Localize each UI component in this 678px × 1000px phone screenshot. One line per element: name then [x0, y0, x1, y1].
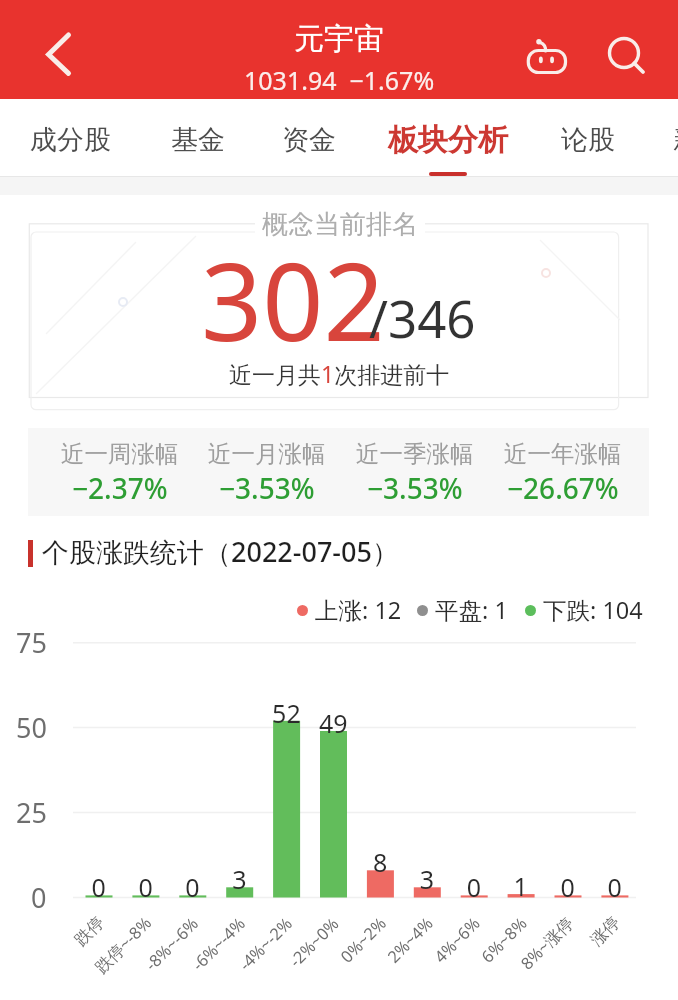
button[interactable]: 基金: [152, 99, 244, 176]
staticText: −26.67%: [507, 469, 619, 507]
staticText: 板块分析: [388, 121, 508, 159]
staticText: 近一年涨幅: [504, 439, 622, 469]
staticText: 下跌: 104: [543, 594, 643, 626]
button[interactable]: 近一年涨幅: [489, 438, 637, 506]
staticText: −3.53%: [367, 469, 463, 507]
staticText: 近一月共1次排进前十: [229, 358, 450, 389]
button[interactable]: Search: [594, 0, 664, 99]
staticText: 平盘: 1: [435, 594, 508, 626]
button[interactable]: Back: [0, 0, 110, 99]
button[interactable]: 上涨: 12: [297, 594, 402, 626]
button[interactable]: 资金: [263, 99, 355, 176]
button[interactable]: 成分股: [10, 99, 130, 176]
button[interactable]: 新闻: [654, 99, 678, 176]
button[interactable]: AI assistant: [512, 0, 586, 99]
button[interactable]: 近一季涨幅: [341, 438, 489, 506]
staticText: 1031.94 −1.67%: [244, 63, 435, 97]
staticText: 成分股: [30, 123, 111, 157]
staticText: /346: [369, 283, 476, 352]
staticText: 概念当前排名: [262, 208, 418, 238]
staticText: 元宇宙: [294, 20, 384, 58]
button[interactable]: 近一月涨幅: [193, 438, 341, 506]
staticText: 资金: [282, 123, 336, 157]
staticText: −2.37%: [72, 469, 168, 507]
staticText: 近一周涨幅: [61, 439, 179, 469]
staticText: 上涨: 12: [315, 594, 402, 626]
staticText: 个股涨跌统计（2022-07-05）: [42, 533, 399, 570]
staticText: 基金: [171, 123, 225, 157]
button[interactable]: 论股: [542, 99, 634, 176]
staticText: −3.53%: [219, 469, 315, 507]
button[interactable]: 近一周涨幅: [46, 438, 193, 506]
button[interactable]: 板块分析: [386, 99, 510, 176]
button[interactable]: 平盘: 1: [417, 594, 508, 626]
staticText: 新闻: [673, 123, 678, 157]
staticText: 近一季涨幅: [356, 439, 474, 469]
button[interactable]: 下跌: 104: [525, 594, 643, 626]
staticText: 近一月涨幅: [208, 439, 326, 469]
staticText: 论股: [561, 123, 615, 157]
staticText: 302: [201, 227, 385, 373]
